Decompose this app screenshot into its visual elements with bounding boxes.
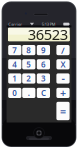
button[interactable]: 4 — [8, 59, 21, 69]
staticText: 1 — [12, 73, 17, 84]
staticText: 7 — [12, 45, 17, 55]
staticText: = — [60, 104, 66, 118]
button[interactable]: 7 — [8, 45, 21, 55]
staticText: 4 — [12, 59, 17, 70]
button[interactable]: Home — [33, 127, 45, 139]
staticText: 9 — [41, 45, 46, 55]
staticText: 36523 — [28, 25, 68, 44]
button[interactable]: X — [56, 59, 70, 69]
staticText: . — [28, 88, 30, 98]
button[interactable]: 9 — [37, 45, 50, 55]
staticText: C — [41, 88, 46, 98]
button[interactable]: / — [56, 45, 70, 55]
button[interactable]: C — [37, 88, 50, 98]
button[interactable]: 3 — [37, 73, 50, 84]
staticText: + — [60, 86, 66, 100]
button[interactable]: 5 — [22, 59, 35, 69]
button[interactable]: . — [22, 88, 35, 98]
staticText: / — [61, 44, 65, 56]
button[interactable]: - — [56, 73, 70, 84]
button[interactable]: 8 — [22, 45, 35, 55]
button[interactable]: 1 — [8, 73, 21, 84]
button[interactable]: 0 — [8, 88, 21, 98]
button[interactable]: = — [56, 102, 70, 120]
button[interactable]: 6 — [37, 59, 50, 69]
staticText: - — [61, 71, 64, 86]
staticText: X — [60, 59, 65, 70]
staticText: 8 — [26, 45, 31, 55]
staticText: 5 — [26, 59, 31, 70]
staticText: 2 — [26, 73, 31, 84]
staticText: 0 — [12, 88, 17, 98]
staticText: 5:13 PM — [42, 21, 56, 27]
button[interactable]: + — [56, 88, 70, 98]
staticText: 6 — [41, 59, 46, 70]
staticText: Carrier — [8, 21, 22, 27]
button[interactable]: 2 — [22, 73, 35, 84]
staticText: 3 — [41, 73, 46, 84]
